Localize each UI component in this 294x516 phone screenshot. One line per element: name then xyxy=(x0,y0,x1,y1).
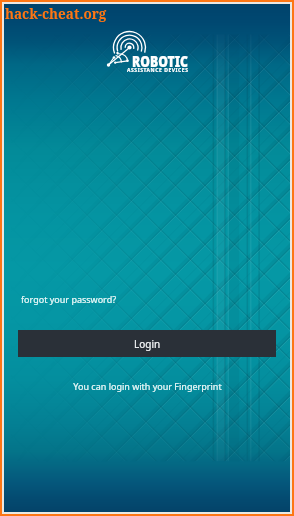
staticText: You can login with your Fingerprint xyxy=(73,380,222,392)
staticText: ROBOTIC xyxy=(132,51,189,72)
staticText: forgot your password? xyxy=(21,293,117,305)
button[interactable]: forgot your password? xyxy=(21,292,290,306)
staticText: Login xyxy=(134,337,161,351)
button[interactable]: Login xyxy=(18,330,276,357)
staticText: hack-cheat.org xyxy=(5,5,107,23)
button[interactable]: You can login with your Fingerprint xyxy=(4,379,290,393)
staticText: ASSISTANCE DEVICES xyxy=(127,67,189,74)
